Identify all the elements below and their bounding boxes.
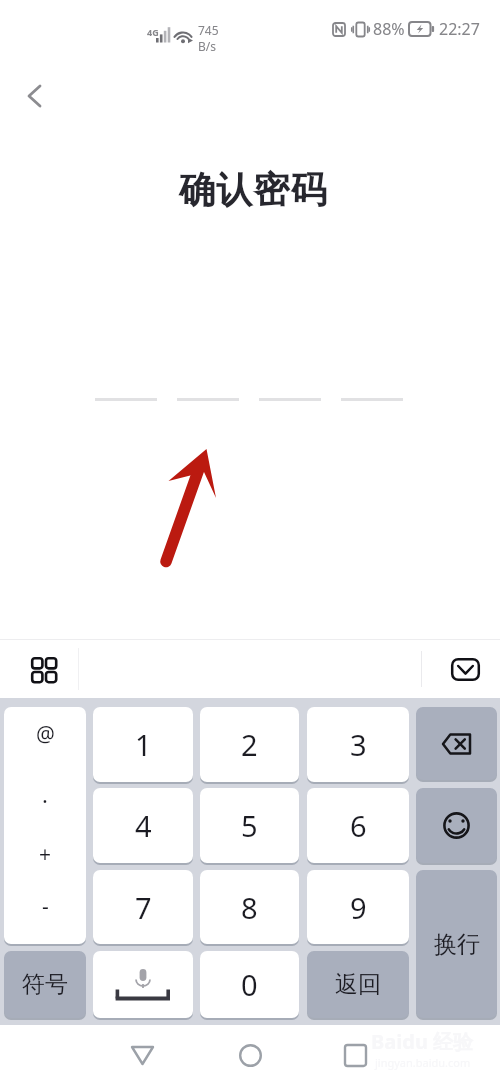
staticText: 2: [241, 725, 258, 764]
staticText: +: [39, 840, 52, 869]
button[interactable]: Backspace: [416, 707, 497, 780]
staticText: 4: [135, 806, 152, 845]
button[interactable]: Back: [118, 1031, 166, 1079]
button[interactable]: 7: [93, 870, 193, 944]
staticText: 7: [135, 888, 152, 927]
button[interactable]: 换行: [416, 870, 497, 1018]
staticText: -: [42, 892, 49, 921]
staticText: 0: [241, 965, 258, 1004]
button[interactable]: Emoji: [416, 788, 497, 863]
staticText: ·: [42, 785, 48, 815]
button[interactable]: Space: [93, 951, 193, 1018]
button[interactable]: 2: [200, 707, 299, 782]
button[interactable]: 4: [93, 788, 193, 863]
staticText: 9: [350, 888, 367, 927]
staticText: B/s: [198, 38, 217, 54]
button[interactable]: 返回: [307, 951, 409, 1018]
staticText: 5: [241, 806, 258, 845]
staticText: 745: [198, 22, 219, 38]
staticText: 6: [350, 806, 367, 845]
button[interactable]: 5: [200, 788, 299, 863]
button[interactable]: @: [4, 707, 86, 944]
staticText: @: [36, 720, 55, 749]
button[interactable]: 6: [307, 788, 409, 863]
staticText: 3: [350, 725, 367, 764]
staticText: 88%: [373, 18, 405, 40]
staticText: 4G: [147, 26, 159, 38]
staticText: 22:27: [439, 18, 480, 40]
staticText: 换行: [434, 930, 480, 959]
staticText: 符号: [22, 970, 68, 999]
staticText: 确认密码: [179, 167, 328, 212]
button[interactable]: 3: [307, 707, 409, 782]
button[interactable]: Hide keyboard: [443, 647, 487, 691]
button[interactable]: 0: [200, 951, 299, 1018]
staticText: Baidu 经验: [371, 1028, 474, 1055]
staticText: 返回: [335, 970, 381, 999]
button[interactable]: Home: [226, 1031, 274, 1079]
button[interactable]: 1: [93, 707, 193, 782]
button[interactable]: 9: [307, 870, 409, 944]
staticText: 8: [241, 888, 258, 927]
button[interactable]: 8: [200, 870, 299, 944]
button[interactable]: 符号: [4, 951, 86, 1018]
button[interactable]: Recents: [331, 1031, 379, 1079]
button[interactable]: Back: [12, 74, 57, 119]
button[interactable]: Keyboard layouts: [22, 648, 64, 690]
staticText: 1: [135, 725, 152, 764]
